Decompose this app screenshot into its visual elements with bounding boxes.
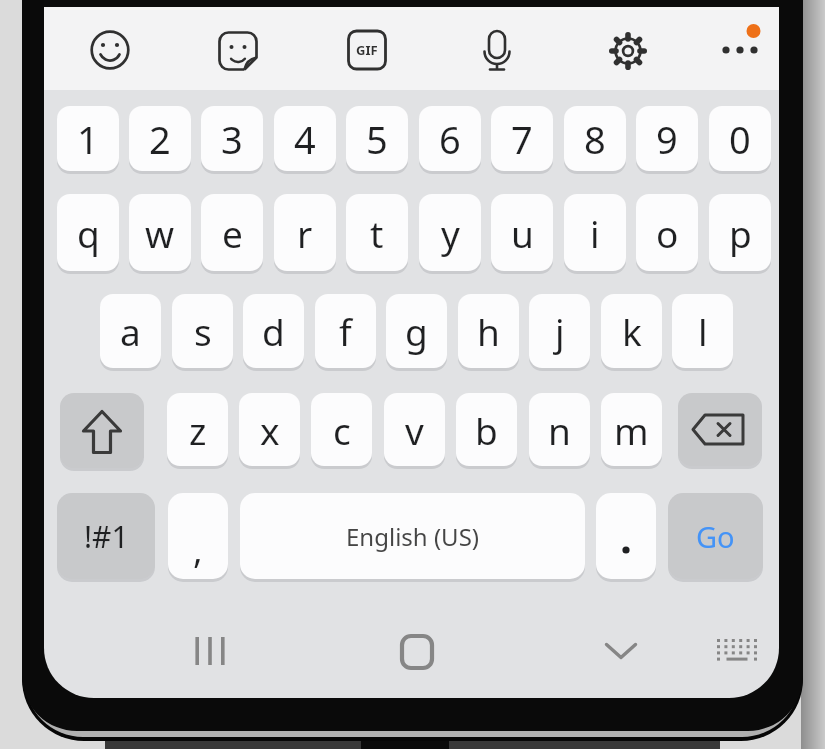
button[interactable] [705, 621, 769, 681]
button[interactable]: o [636, 194, 698, 271]
button[interactable]: q [57, 194, 119, 271]
staticText: g [405, 306, 428, 356]
button[interactable]: m [601, 393, 662, 466]
staticText: , [193, 525, 203, 574]
staticText: a [120, 306, 141, 356]
button[interactable] [385, 622, 449, 682]
staticText: 9 [656, 113, 678, 165]
button[interactable] [589, 621, 653, 681]
button[interactable]: 2 [129, 106, 191, 171]
button[interactable]: h [458, 294, 519, 368]
staticText: n [548, 405, 571, 455]
button[interactable]: x [239, 393, 300, 466]
staticText: e [222, 208, 243, 258]
button[interactable]: w [129, 194, 191, 271]
staticText: k [622, 306, 642, 356]
staticText: 0 [729, 113, 751, 165]
button[interactable]: 6 [419, 106, 481, 171]
button[interactable] [178, 621, 242, 681]
button[interactable]: k [601, 294, 662, 368]
staticText: y [441, 208, 460, 258]
staticText: 4 [294, 113, 316, 165]
button[interactable]: , [168, 493, 228, 579]
button[interactable] [467, 18, 527, 82]
button[interactable]: d [243, 294, 304, 368]
button[interactable]: u [491, 194, 553, 271]
button[interactable]: 5 [346, 106, 408, 171]
staticText: f [339, 306, 352, 356]
button[interactable]: c [311, 393, 372, 466]
staticText: z [189, 405, 207, 455]
staticText: s [194, 306, 212, 356]
button[interactable]: l [672, 294, 733, 368]
button[interactable] [708, 16, 772, 80]
staticText: GIF [356, 41, 378, 59]
staticText: x [260, 405, 280, 455]
button[interactable]: t [346, 194, 408, 271]
button[interactable]: s [172, 294, 233, 368]
staticText: Go [696, 517, 735, 556]
button[interactable] [678, 393, 762, 466]
staticText: q [77, 208, 100, 258]
staticText: !#1 [84, 516, 129, 557]
staticText: o [656, 208, 679, 258]
button[interactable]: 4 [274, 106, 336, 171]
button[interactable]: v [384, 393, 445, 466]
button[interactable]: 8 [564, 106, 626, 171]
staticText: v [405, 405, 424, 455]
staticText: English (US) [346, 520, 480, 553]
button[interactable]: i [564, 194, 626, 271]
button[interactable] [60, 393, 144, 468]
staticText: m [614, 405, 649, 455]
staticText: t [370, 208, 384, 258]
button[interactable]: b [456, 393, 517, 466]
button[interactable]: r [274, 194, 336, 271]
button[interactable]: 1 [57, 106, 119, 171]
button[interactable]: p [709, 194, 771, 271]
staticText: i [590, 208, 600, 258]
staticText: j [555, 306, 565, 356]
staticText: c [333, 405, 351, 455]
button[interactable] [596, 493, 656, 579]
button[interactable] [80, 18, 140, 82]
button[interactable]: 0 [709, 106, 771, 171]
staticText: h [477, 306, 500, 356]
button[interactable]: GIF [337, 18, 397, 82]
button[interactable] [598, 19, 658, 83]
button[interactable] [208, 19, 268, 83]
staticText: r [297, 208, 313, 258]
button[interactable]: n [529, 393, 590, 466]
button[interactable]: y [419, 194, 481, 271]
staticText: u [511, 208, 534, 258]
staticText: 1 [77, 113, 99, 165]
button[interactable]: f [315, 294, 376, 368]
staticText: 5 [366, 113, 388, 165]
button[interactable]: !#1 [57, 493, 155, 579]
staticText: b [475, 405, 498, 455]
staticText: l [698, 306, 708, 356]
staticText: 2 [149, 113, 171, 165]
staticText: w [145, 208, 175, 258]
button[interactable]: z [167, 393, 228, 466]
staticText: 6 [439, 113, 461, 165]
button[interactable]: j [529, 294, 590, 368]
staticText: p [729, 208, 752, 258]
staticText: 3 [221, 113, 243, 165]
button[interactable]: a [100, 294, 161, 368]
button[interactable]: e [201, 194, 263, 271]
button[interactable]: Go [668, 493, 763, 579]
button[interactable]: 9 [636, 106, 698, 171]
button[interactable]: English (US) [240, 493, 585, 579]
button[interactable]: 3 [201, 106, 263, 171]
staticText: d [262, 306, 285, 356]
staticText: 8 [584, 113, 606, 165]
staticText: 7 [511, 113, 533, 165]
button[interactable]: g [386, 294, 447, 368]
button[interactable]: 7 [491, 106, 553, 171]
